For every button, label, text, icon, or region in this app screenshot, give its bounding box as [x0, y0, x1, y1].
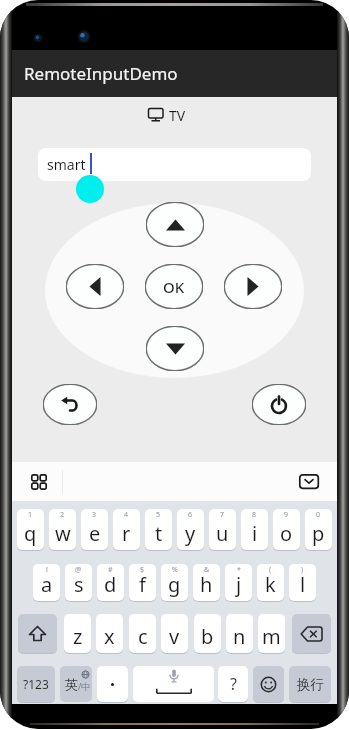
button[interactable]: b — [194, 614, 221, 653]
button[interactable] — [252, 384, 306, 425]
button[interactable] — [18, 614, 57, 653]
button[interactable]: 8 — [241, 509, 268, 550]
staticText: h — [200, 571, 213, 598]
button[interactable] — [294, 467, 325, 497]
staticText: l — [300, 571, 306, 598]
staticText: y — [185, 520, 196, 547]
button[interactable]: ! — [33, 564, 60, 601]
button[interactable]: 1 — [17, 509, 44, 550]
button[interactable] — [224, 264, 282, 309]
staticText: 英 — [65, 676, 78, 692]
button[interactable]: n — [226, 614, 253, 653]
button[interactable] — [66, 264, 124, 309]
staticText: a — [41, 571, 53, 598]
staticText: f — [139, 571, 146, 598]
staticText: t — [155, 520, 163, 547]
staticText: m — [262, 623, 281, 650]
button[interactable]: OK — [145, 264, 203, 309]
button[interactable]: 7 — [209, 509, 236, 550]
button[interactable]: 2 — [49, 509, 76, 550]
button[interactable] — [292, 614, 331, 653]
staticText: q — [24, 520, 37, 547]
button[interactable]: & — [193, 564, 220, 601]
button[interactable] — [97, 666, 128, 702]
button[interactable]: $ — [129, 564, 156, 601]
button[interactable] — [24, 467, 54, 497]
button[interactable] — [146, 326, 204, 371]
staticText: i — [252, 520, 258, 547]
staticText: 1 — [28, 510, 33, 520]
button[interactable]: 6 — [177, 509, 204, 550]
staticText: TV — [169, 106, 186, 125]
button[interactable]: @ — [65, 564, 92, 601]
staticText: o — [280, 520, 293, 547]
staticText: ?123 — [23, 676, 49, 692]
staticText: 4 — [124, 510, 129, 520]
button[interactable]: 换行 — [289, 666, 331, 702]
staticText: 5 — [156, 510, 161, 520]
button[interactable]: ?123 — [17, 666, 55, 702]
button[interactable] — [253, 666, 284, 702]
staticText: 换行 — [297, 676, 324, 693]
staticText: k — [265, 571, 276, 598]
staticText: v — [169, 623, 180, 650]
staticText: RemoteInputDemo — [24, 62, 178, 85]
staticText: r — [122, 520, 131, 547]
button[interactable]: ? — [218, 666, 248, 702]
staticText: 8 — [252, 510, 257, 520]
staticText: b — [201, 623, 214, 650]
button[interactable]: % — [161, 564, 188, 601]
staticText: j — [236, 571, 242, 598]
button[interactable]: 4 — [113, 509, 140, 550]
button[interactable] — [43, 384, 97, 425]
staticText: z — [73, 623, 83, 650]
button[interactable]: smart — [38, 148, 311, 181]
button[interactable]: 0 — [305, 509, 332, 550]
staticText: smart — [47, 155, 86, 174]
staticText: s — [74, 571, 84, 598]
staticText: ? — [230, 673, 237, 695]
button[interactable]: 3 — [81, 509, 108, 550]
button[interactable] — [133, 666, 214, 702]
staticText: ! — [46, 565, 48, 575]
button[interactable]: ) — [289, 564, 316, 601]
button[interactable]: c — [129, 614, 156, 653]
staticText: $ — [140, 565, 145, 575]
staticText: & — [204, 565, 210, 575]
staticText: e — [89, 520, 101, 547]
staticText: c — [138, 623, 148, 650]
button[interactable]: 英 — [60, 666, 92, 702]
staticText: @ — [75, 565, 82, 575]
button[interactable] — [76, 175, 104, 203]
button[interactable]: m — [258, 614, 285, 653]
staticText: x — [104, 623, 115, 650]
button[interactable]: 9 — [273, 509, 300, 550]
staticText: OK — [163, 277, 185, 297]
staticText: 2 — [60, 510, 65, 520]
staticText: 6 — [188, 510, 193, 520]
button[interactable]: v — [161, 614, 188, 653]
staticText: n — [233, 623, 246, 650]
button[interactable]: ( — [257, 564, 284, 601]
staticText: d — [104, 571, 117, 598]
staticText: /中 — [78, 680, 91, 692]
button[interactable]: x — [96, 614, 123, 653]
staticText: # — [108, 565, 113, 575]
button[interactable] — [12, 462, 337, 502]
staticText: g — [168, 571, 181, 598]
button[interactable]: * — [225, 564, 252, 601]
button[interactable]: z — [64, 614, 91, 653]
button[interactable] — [146, 202, 204, 247]
staticText: ( — [269, 565, 272, 575]
staticText: 3 — [92, 510, 97, 520]
staticText: 7 — [220, 510, 225, 520]
staticText: 0 — [316, 510, 321, 520]
staticText: * — [237, 565, 241, 575]
button[interactable]: # — [97, 564, 124, 601]
button[interactable]: 5 — [145, 509, 172, 550]
staticText: 9 — [284, 510, 289, 520]
staticText: p — [312, 520, 325, 547]
staticText: u — [216, 520, 229, 547]
staticText: ) — [301, 565, 304, 575]
staticText: % — [172, 565, 178, 575]
